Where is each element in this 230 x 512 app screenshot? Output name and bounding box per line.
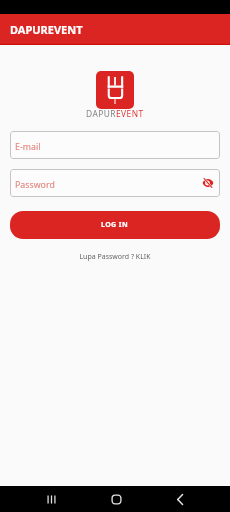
button[interactable]: E-mail (10, 131, 220, 159)
staticText: LOG IN (101, 220, 129, 230)
staticText: DAPUREVENT (86, 108, 144, 119)
staticText: Password (15, 179, 55, 191)
button[interactable]: Lupa Password ? KLIK (0, 252, 230, 262)
staticText: DAPUREVENT (10, 22, 83, 37)
button[interactable]: Home (106, 489, 126, 509)
button[interactable]: Password (10, 169, 220, 197)
staticText: E-mail (15, 141, 41, 153)
button[interactable]: Recents (41, 489, 61, 509)
button[interactable]: Back (170, 489, 190, 509)
button[interactable]: Toggle password visibility (200, 175, 216, 191)
button[interactable]: LOG IN (10, 211, 220, 239)
